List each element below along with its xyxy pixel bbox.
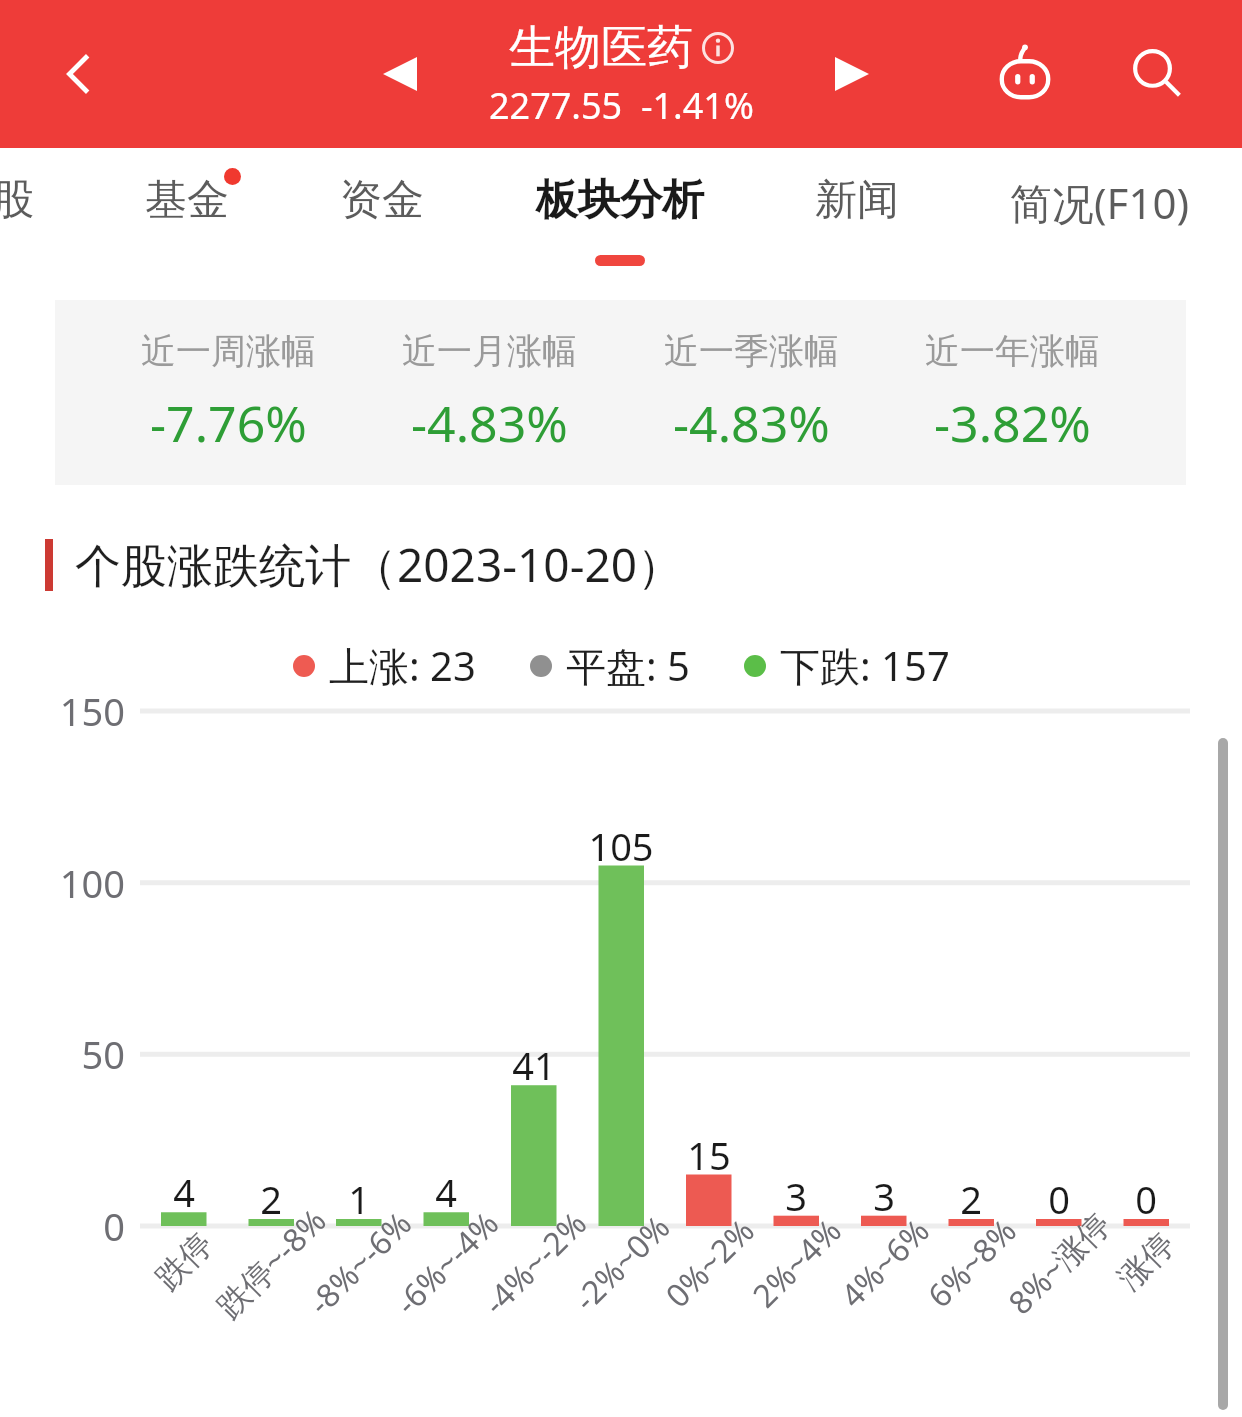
staticText: 1	[314, 1173, 404, 1225]
button[interactable]: 近一周涨幅	[141, 329, 316, 457]
staticText: 近一月涨幅	[402, 329, 577, 373]
button[interactable]: 简况(F10)	[988, 148, 1212, 259]
staticText: 股	[0, 174, 34, 227]
staticText: 新闻	[815, 174, 899, 227]
button[interactable]: 近一月涨幅	[402, 329, 577, 457]
button[interactable]: Previous sector	[355, 29, 445, 119]
staticText: 3	[751, 1170, 841, 1222]
button[interactable]: 下跌: 157	[744, 638, 950, 693]
staticText: 个股涨跌统计（2023-10-20）	[75, 533, 684, 596]
staticText: -8%~-6%	[298, 1202, 421, 1324]
staticText: 4%~6%	[830, 1209, 939, 1317]
staticText: 8%~涨停	[998, 1202, 1120, 1324]
staticText: 基金	[145, 174, 229, 227]
staticText: 4	[139, 1166, 229, 1218]
staticText: 41	[489, 1039, 579, 1091]
button[interactable]: 近一年涨幅	[925, 329, 1100, 457]
button[interactable]: Search	[1112, 29, 1202, 119]
button[interactable]: 板块分析	[514, 148, 726, 266]
button[interactable]: 近一季涨幅	[664, 329, 839, 457]
staticText: 平盘: 5	[566, 638, 690, 693]
staticText: 3	[839, 1170, 929, 1222]
staticText: 2	[926, 1173, 1016, 1225]
staticText: 150	[0, 685, 125, 737]
button[interactable]: 资金	[318, 148, 446, 255]
staticText: 跌停	[147, 1224, 221, 1298]
staticText: 板块分析	[536, 174, 704, 227]
staticText: 105	[576, 820, 666, 872]
button[interactable]: 新闻	[793, 148, 921, 255]
staticText: -4.83%	[673, 389, 830, 457]
staticText: 2%~4%	[742, 1209, 851, 1317]
staticText: 资金	[340, 174, 424, 227]
button[interactable]: Back	[40, 34, 120, 114]
staticText: 6%~8%	[917, 1209, 1026, 1317]
staticText: -7.76%	[150, 389, 307, 457]
staticText: 跌停~-8%	[207, 1199, 335, 1327]
button[interactable]: 上涨: 23	[293, 638, 476, 693]
staticText: 2277.55 -1.41%	[489, 81, 754, 130]
staticText: -2%~0%	[564, 1205, 679, 1321]
staticText: 近一年涨幅	[925, 329, 1100, 373]
staticText: 15	[664, 1129, 754, 1181]
staticText: 0%~2%	[655, 1209, 764, 1317]
button[interactable]: Next sector	[807, 29, 897, 119]
staticText: -6%~-4%	[385, 1202, 508, 1324]
staticText: 4	[401, 1166, 491, 1218]
staticText: 简况(F10)	[1010, 174, 1190, 231]
staticText: 近一季涨幅	[664, 329, 839, 373]
staticText: 0	[0, 1200, 125, 1252]
staticText: 生物医药	[509, 19, 693, 77]
button[interactable]: Info	[701, 31, 735, 65]
staticText: 上涨: 23	[329, 638, 476, 693]
staticText: 2	[226, 1173, 316, 1225]
staticText: 下跌: 157	[780, 638, 950, 693]
button[interactable]: 基金	[123, 148, 251, 255]
staticText: 100	[0, 857, 125, 909]
button[interactable]: 平盘: 5	[530, 638, 690, 693]
staticText: 近一周涨幅	[141, 329, 316, 373]
staticText: 0	[1014, 1173, 1104, 1225]
button[interactable]: AI assistant	[980, 29, 1070, 119]
staticText: 涨停	[1109, 1224, 1183, 1298]
button[interactable]: 股	[0, 148, 56, 255]
staticText: -4%~-2%	[473, 1202, 596, 1324]
staticText: -4.83%	[411, 389, 568, 457]
staticText: 50	[0, 1028, 125, 1080]
staticText: 0	[1101, 1173, 1191, 1225]
staticText: -3.82%	[934, 389, 1091, 457]
